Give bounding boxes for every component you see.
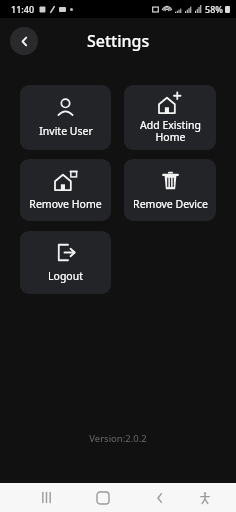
button[interactable]: Add Existing Home [124,85,216,150]
button[interactable]: Home [88,483,118,512]
staticText: Add Existing Home [140,118,201,144]
button[interactable]: Recent apps [31,483,61,512]
button[interactable]: Invite User [20,85,111,150]
button[interactable]: Accessibility [190,483,220,512]
staticText: Remove Device [133,197,208,211]
staticText: Settings [87,30,150,52]
staticText: 58% [205,3,223,15]
staticText: Invite User [39,124,93,138]
staticText: Remove Home [29,197,102,211]
staticText: 11:40 [11,3,35,15]
staticText: Version:2.0.2 [89,432,147,445]
staticText: Logout [48,269,83,283]
button[interactable]: Back [10,27,38,55]
button[interactable]: Remove Home [20,159,111,221]
button[interactable]: Back [145,483,175,512]
button[interactable]: Remove Device [124,159,216,221]
button[interactable]: Logout [20,231,111,294]
